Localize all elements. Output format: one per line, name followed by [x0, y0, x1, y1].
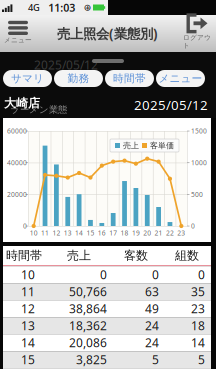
staticText: 11:03: [48, 0, 75, 15]
staticText: 2025/05/12: [134, 96, 208, 114]
staticText: 23: [191, 301, 205, 317]
staticText: ログアウト: [183, 33, 211, 50]
staticText: 客単価: [150, 141, 174, 150]
staticText: 22: [166, 229, 174, 237]
staticText: 18,362: [69, 318, 107, 334]
staticText: 19: [132, 229, 140, 237]
staticText: 24: [145, 335, 159, 351]
staticText: メニュー: [4, 36, 32, 44]
staticText: 35: [191, 284, 205, 300]
staticText: 17: [109, 229, 117, 237]
staticText: 38,864: [69, 301, 107, 317]
staticText: 組数: [175, 248, 199, 263]
staticText: 大崎店: [4, 96, 40, 111]
button[interactable]: サマリ: [3, 70, 52, 87]
staticText: 10: [21, 267, 35, 283]
staticText: 0: [100, 267, 107, 283]
staticText: サマリ: [11, 72, 44, 85]
staticText: 24: [145, 318, 159, 334]
staticText: 0: [23, 222, 27, 230]
staticText: 時間帯: [6, 248, 42, 263]
staticText: 40000: [7, 158, 27, 167]
staticText: 売上: [67, 248, 91, 263]
button[interactable]: 時間帯: [105, 70, 154, 87]
staticText: 49: [145, 301, 159, 317]
staticText: 21: [155, 229, 163, 237]
staticText: 15: [21, 352, 35, 368]
staticText: 1500: [191, 127, 207, 135]
staticText: 11: [21, 284, 35, 300]
staticText: 2025/05/12: [34, 57, 98, 73]
staticText: 客数: [124, 248, 148, 263]
staticText: 18: [191, 318, 205, 334]
staticText: 5: [198, 352, 205, 368]
staticText: 20,086: [69, 335, 107, 351]
staticText: 勤務: [67, 72, 89, 85]
staticText: 16: [98, 229, 106, 237]
staticText: 1000: [191, 158, 207, 167]
staticText: 10: [30, 229, 38, 237]
staticText: 14: [75, 229, 83, 237]
staticText: 18: [120, 229, 128, 237]
staticText: 50,766: [69, 284, 107, 300]
button[interactable]: メニュー: [156, 70, 205, 87]
button[interactable]: 勤務: [54, 70, 103, 87]
staticText: 20: [143, 229, 151, 237]
staticText: 500: [191, 190, 203, 199]
staticText: 20000: [7, 190, 27, 199]
staticText: 23: [177, 229, 185, 237]
staticText: 14: [21, 335, 35, 351]
staticText: 時間帯: [113, 72, 146, 85]
staticText: 3,825: [76, 352, 107, 368]
staticText: 13: [21, 318, 35, 334]
staticText: 0: [191, 222, 195, 230]
button[interactable]: ログアウト: [182, 15, 212, 52]
staticText: 63: [145, 284, 159, 300]
staticText: メニュー: [158, 72, 202, 85]
staticText: 13: [64, 229, 72, 237]
staticText: 11: [41, 229, 49, 237]
staticText: 15: [86, 229, 94, 237]
staticText: 12: [21, 301, 35, 317]
staticText: 0: [152, 267, 159, 283]
staticText: 売上: [123, 141, 139, 150]
staticText: 14: [191, 335, 205, 351]
staticText: 5: [152, 352, 159, 368]
staticText: 12: [52, 229, 60, 237]
staticText: 0: [198, 267, 205, 283]
staticText: 売上照会(業態別): [57, 25, 158, 42]
staticText: ⊕: [83, 2, 91, 13]
staticText: 4G: [28, 1, 40, 14]
button[interactable]: メニュー: [3, 15, 33, 52]
staticText: 60000: [7, 127, 27, 135]
staticText: ラーメン業態: [10, 104, 67, 115]
